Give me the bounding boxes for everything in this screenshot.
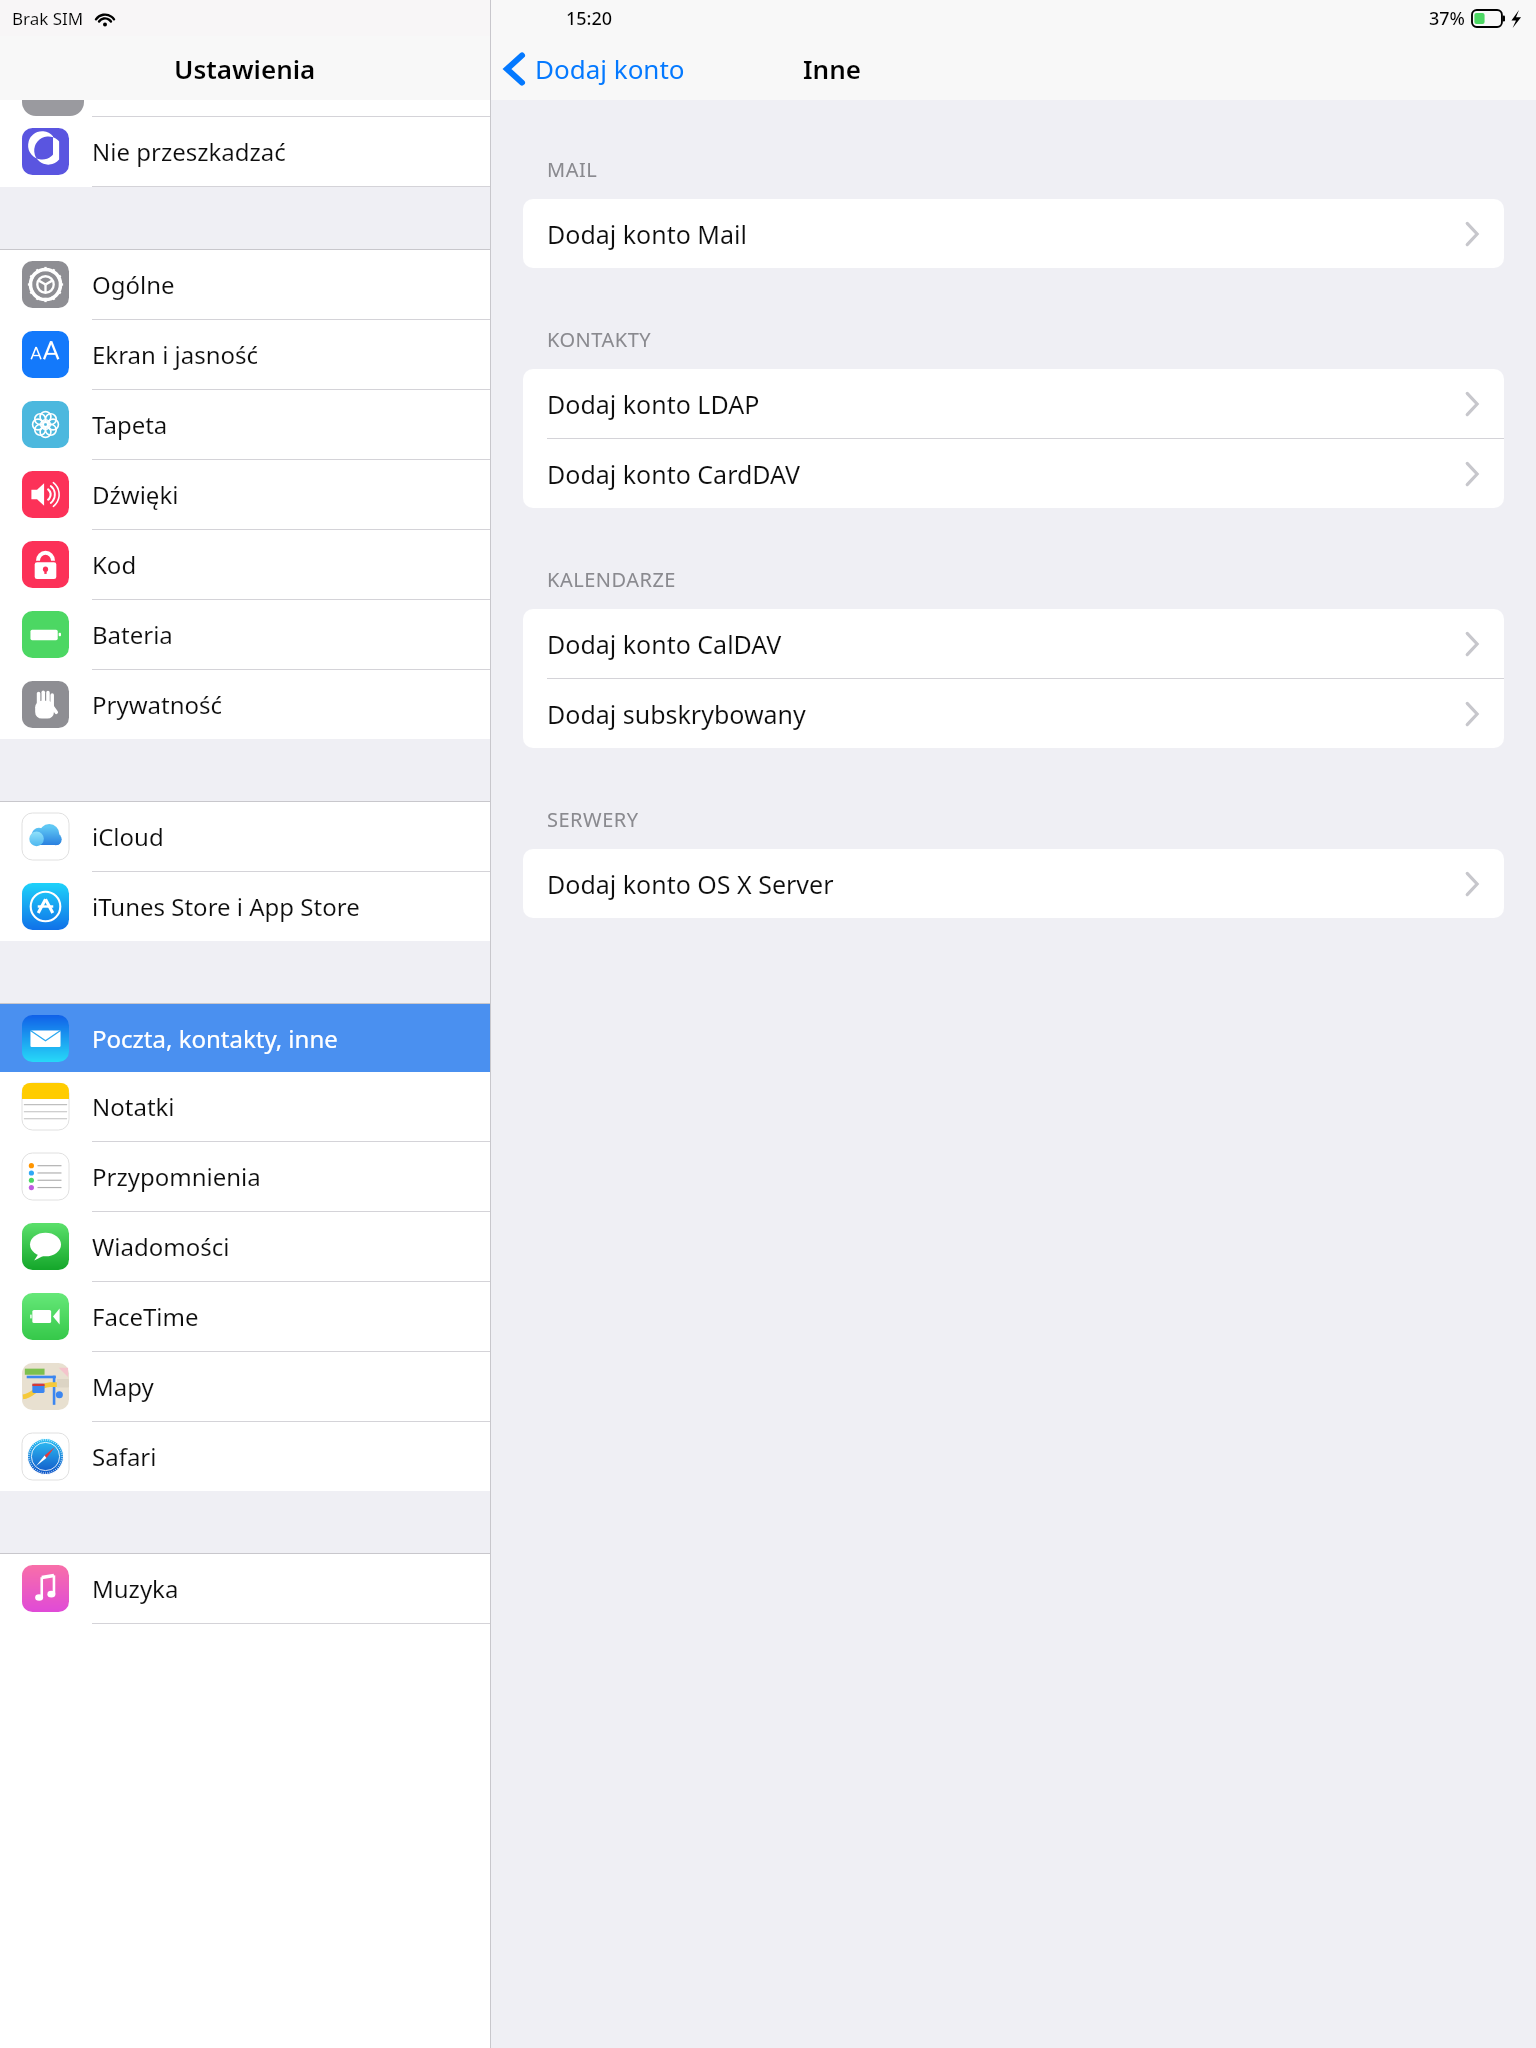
button[interactable]: FaceTime	[0, 1282, 490, 1351]
staticText: Dźwięki	[92, 478, 179, 511]
staticText: Ogólne	[92, 268, 175, 301]
staticText: 15:20	[566, 6, 613, 31]
staticText: Prywatność	[92, 688, 223, 721]
staticText: Bateria	[92, 618, 173, 651]
staticText: Ekran i jasność	[92, 338, 259, 371]
staticText: Brak SIM	[12, 7, 84, 30]
staticText: Dodaj konto	[535, 51, 685, 86]
staticText: Dodaj konto CalDAV	[547, 627, 782, 661]
staticText: MAIL	[547, 156, 598, 183]
button[interactable]: Dodaj konto LDAP	[523, 369, 1504, 438]
staticText: Nie przeszkadzać	[92, 135, 286, 168]
staticText: Wiadomości	[92, 1230, 230, 1263]
button[interactable]: Dodaj konto CardDAV	[523, 439, 1504, 508]
staticText: Dodaj konto Mail	[547, 217, 747, 251]
button[interactable]: Safari	[0, 1422, 490, 1491]
button[interactable]: Poczta, kontakty, inne	[0, 1004, 490, 1072]
staticText: FaceTime	[92, 1300, 199, 1333]
button[interactable]: Nie przeszkadzać	[0, 117, 490, 186]
staticText: Dodaj subskrybowany	[547, 697, 806, 731]
staticText: Przypomnienia	[92, 1160, 261, 1193]
button[interactable]: Ogólne	[0, 250, 490, 319]
button[interactable]: iCloud	[0, 802, 490, 871]
staticText: Kod	[92, 548, 137, 581]
button[interactable]: Dodaj konto	[505, 51, 685, 86]
button[interactable]: iTunes Store i App Store	[0, 872, 490, 941]
staticText: KONTAKTY	[547, 326, 652, 353]
button[interactable]: Muzyka	[0, 1554, 490, 1623]
button[interactable]: Dodaj subskrybowany	[523, 679, 1504, 748]
staticText: SERWERY	[547, 806, 639, 833]
button[interactable]: Notatki	[0, 1072, 490, 1141]
button[interactable]: Tapeta	[0, 390, 490, 459]
button[interactable]: Kod	[0, 530, 490, 599]
button[interactable]: Mapy	[0, 1352, 490, 1421]
button[interactable]: Dodaj konto Mail	[523, 199, 1504, 268]
staticText: Poczta, kontakty, inne	[92, 1022, 338, 1055]
staticText: Safari	[92, 1440, 157, 1473]
button[interactable]: Bateria	[0, 600, 490, 669]
staticText: Dodaj konto OS X Server	[547, 867, 834, 901]
staticText: Ustawienia	[174, 51, 316, 86]
button[interactable]: Wiadomości	[0, 1212, 490, 1281]
staticText: KALENDARZE	[547, 566, 676, 593]
staticText: Mapy	[92, 1370, 154, 1403]
staticText: iTunes Store i App Store	[92, 890, 360, 923]
button[interactable]: Ekran i jasność	[0, 320, 490, 389]
staticText: Inne	[803, 51, 862, 86]
staticText: Dodaj konto CardDAV	[547, 457, 801, 491]
staticText: Muzyka	[92, 1572, 179, 1605]
staticText: Notatki	[92, 1090, 175, 1123]
staticText: Tapeta	[92, 408, 168, 441]
button[interactable]: Przypomnienia	[0, 1142, 490, 1211]
button[interactable]: Dźwięki	[0, 460, 490, 529]
staticText: iCloud	[92, 820, 164, 853]
button[interactable]: Prywatność	[0, 670, 490, 739]
button[interactable]: Dodaj konto CalDAV	[523, 609, 1504, 678]
staticText: 37%	[1429, 6, 1465, 31]
staticText: Dodaj konto LDAP	[547, 387, 760, 421]
button[interactable]: Dodaj konto OS X Server	[523, 849, 1504, 918]
